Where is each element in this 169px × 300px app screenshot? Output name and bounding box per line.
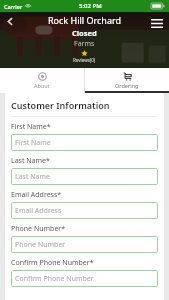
button[interactable]: Last Name (11, 168, 158, 185)
button[interactable]: Phone Number (11, 236, 158, 253)
staticText: Last Name (15, 172, 51, 182)
button[interactable]: Ordering (85, 68, 169, 93)
staticText: First Name* (11, 122, 51, 132)
staticText: Last Name* (11, 156, 50, 166)
staticText: First Name (15, 138, 51, 148)
staticText: Confirm Phone Number (15, 274, 94, 284)
staticText: Email Address (15, 206, 62, 216)
staticText: Carrier (4, 3, 23, 10)
button[interactable]: Email Address (11, 202, 158, 219)
staticText: About (34, 82, 50, 89)
staticText: Phone Number (15, 240, 66, 250)
button[interactable]: First Name (11, 134, 158, 151)
staticText: Closed (72, 28, 97, 38)
staticText: 5:02 PM (79, 2, 102, 10)
staticText: Farms (74, 39, 95, 49)
button[interactable]: Menu (148, 14, 166, 32)
staticText: Email Address* (11, 190, 62, 200)
staticText: Confirm Phone Number* (11, 258, 94, 268)
staticText: Reviews(0) (73, 57, 96, 63)
staticText: Rock Hill Orchard (48, 14, 122, 26)
button[interactable]: Confirm Phone Number (11, 270, 158, 287)
staticText: Ordering (115, 82, 139, 89)
button[interactable]: About (0, 68, 84, 93)
staticText: Phone Number* (11, 224, 66, 234)
staticText: Customer Information (11, 99, 110, 111)
button[interactable]: Back (2, 13, 18, 29)
